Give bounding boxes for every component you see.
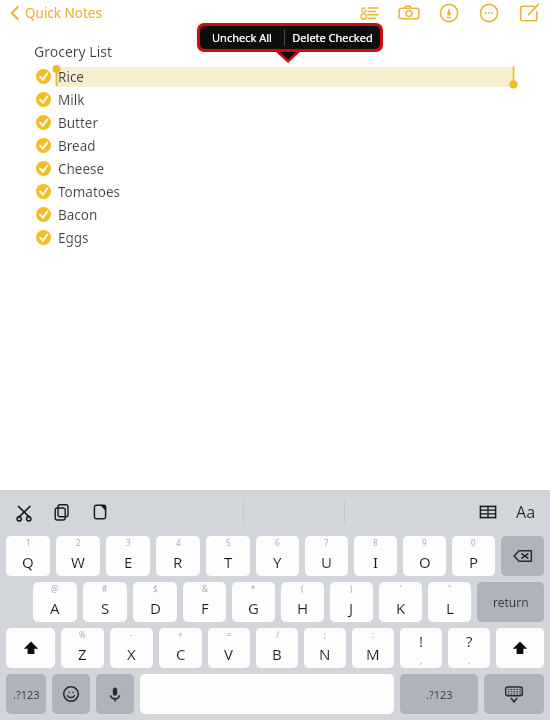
button[interactable]: Hide keyboard (484, 674, 544, 714)
button[interactable]: " (428, 582, 471, 622)
staticText: Bread (58, 137, 96, 155)
button[interactable]: Markup (436, 0, 462, 26)
staticText: C (176, 644, 186, 664)
staticText: B (272, 644, 282, 664)
button[interactable]: 6 (256, 536, 299, 576)
button[interactable]: Uncheck All (200, 26, 284, 49)
button[interactable]: ' (379, 582, 422, 622)
staticText: O (419, 552, 431, 572)
staticText: U (321, 552, 332, 572)
staticText: & (202, 583, 208, 594)
button[interactable]: Eggs (0, 226, 550, 249)
staticText: ( (301, 583, 304, 594)
staticText: @ (51, 583, 59, 594)
button[interactable]: Checklist (356, 0, 382, 26)
staticText: 9 (422, 537, 427, 548)
staticText: % (79, 629, 86, 640)
button[interactable]: ) (330, 582, 373, 622)
staticText: X (127, 644, 136, 664)
button[interactable]: Bacon (0, 203, 550, 226)
staticText: L (446, 598, 454, 618)
button[interactable]: Backspace (501, 536, 544, 576)
button[interactable]: # (83, 582, 127, 622)
staticText: Milk (58, 91, 85, 109)
button[interactable]: Butter (0, 111, 550, 134)
staticText: E (124, 552, 133, 572)
button[interactable]: 8 (354, 536, 397, 576)
staticText: A (50, 598, 60, 618)
button[interactable]: Cut (12, 500, 36, 524)
button[interactable]: 1 (6, 536, 50, 576)
staticText: P (469, 552, 479, 572)
staticText: Eggs (58, 229, 89, 247)
staticText: I (373, 552, 379, 572)
button[interactable]: / (256, 628, 298, 668)
button[interactable]: . (448, 628, 490, 668)
button[interactable]: , (400, 628, 442, 668)
button[interactable]: 2 (56, 536, 100, 576)
staticText: K (396, 598, 406, 618)
button[interactable]: New note (516, 0, 542, 26)
staticText: ! (419, 631, 424, 651)
staticText: Butter (58, 114, 99, 132)
button[interactable]: Copy (50, 500, 74, 524)
button[interactable]: Aa (514, 500, 538, 524)
button[interactable]: 4 (156, 536, 200, 576)
button[interactable]: .?123 (6, 674, 46, 714)
button[interactable]: 7 (305, 536, 348, 576)
button[interactable]: % (61, 628, 104, 668)
staticText: 8 (373, 537, 378, 548)
button[interactable]: return (477, 582, 544, 622)
staticText: ; (324, 629, 327, 640)
staticText: J (349, 598, 354, 618)
staticText: T (224, 552, 233, 572)
button[interactable]: 3 (106, 536, 150, 576)
staticText: S (101, 598, 110, 618)
button[interactable]: Camera (396, 0, 422, 26)
button[interactable]: * (232, 582, 275, 622)
button[interactable]: 9 (403, 536, 446, 576)
button[interactable]: Paste (88, 500, 112, 524)
staticText: ) (350, 583, 353, 594)
button[interactable]: Shift (6, 628, 55, 668)
staticText: 4 (176, 537, 181, 548)
staticText: , (420, 655, 423, 666)
button[interactable]: = (208, 628, 250, 668)
staticText: 2 (76, 537, 81, 548)
staticText: 0 (471, 537, 476, 548)
button[interactable]: ; (304, 628, 346, 668)
button[interactable]: Shift right (496, 628, 544, 668)
button[interactable]: $ (133, 582, 177, 622)
staticText: ' (400, 583, 402, 594)
staticText: V (224, 644, 234, 664)
button[interactable]: 0 (452, 536, 495, 576)
button[interactable]: + (159, 628, 202, 668)
button[interactable]: Table (476, 500, 500, 524)
button[interactable]: Bread (0, 134, 550, 157)
button[interactable]: ( (281, 582, 324, 622)
staticText: W (71, 552, 85, 572)
button[interactable]: - (110, 628, 153, 668)
button[interactable]: More (476, 0, 502, 26)
button[interactable]: Dictate (96, 674, 134, 714)
staticText: R (173, 552, 183, 572)
button[interactable]: Milk (0, 88, 550, 111)
button[interactable]: @ (33, 582, 77, 622)
staticText: . (468, 655, 471, 666)
staticText: Aa (516, 501, 536, 523)
button[interactable]: & (183, 582, 226, 622)
staticText: Quick Notes (25, 4, 102, 22)
button[interactable]: Cheese (0, 157, 550, 180)
staticText: / (276, 629, 279, 640)
button[interactable]: .?123 (400, 674, 478, 714)
button[interactable]: Emoji (52, 674, 90, 714)
button[interactable]: Rice (0, 65, 550, 88)
button[interactable]: Tomatoes (0, 180, 550, 203)
button[interactable]: 5 (206, 536, 250, 576)
button[interactable]: Delete Checked (285, 26, 380, 49)
staticText: M (366, 644, 380, 664)
button[interactable]: : (352, 628, 394, 668)
staticText: .?123 (426, 687, 453, 702)
button[interactable]: Quick Notes (6, 0, 106, 26)
